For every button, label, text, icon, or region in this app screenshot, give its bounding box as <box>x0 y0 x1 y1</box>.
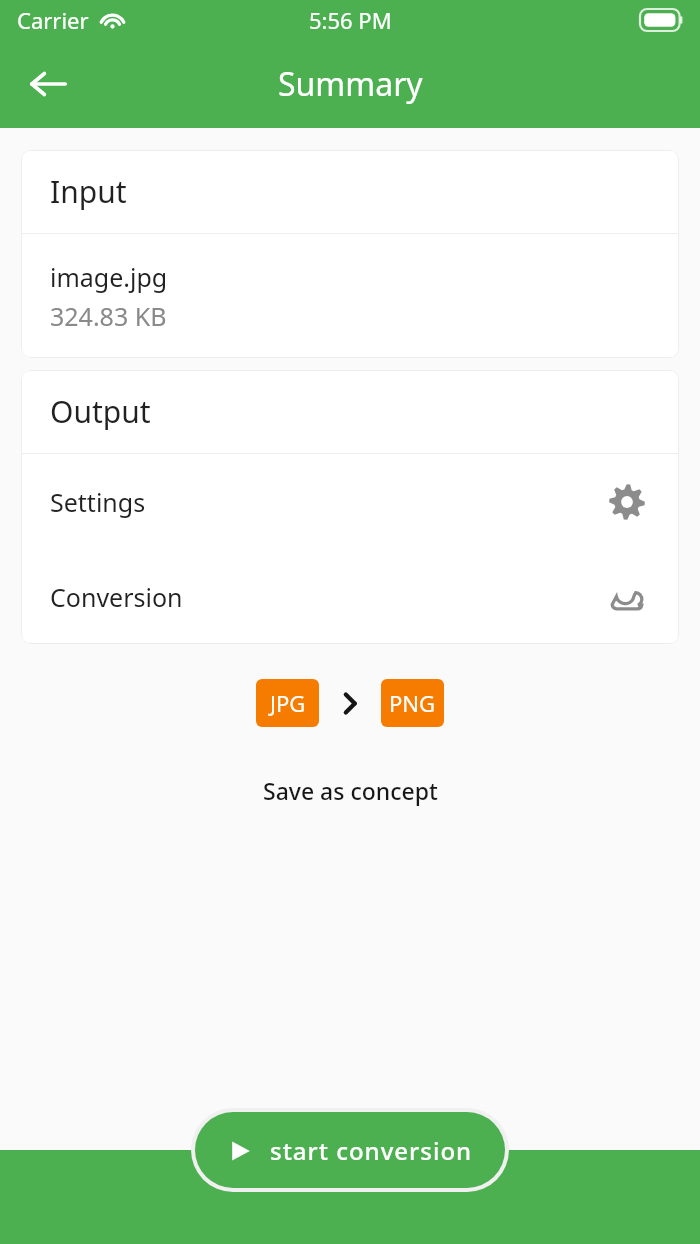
staticText: Carrier <box>17 5 89 35</box>
staticText: JPG <box>270 688 306 718</box>
staticText: Input <box>50 171 127 212</box>
staticText: Settings <box>50 485 146 519</box>
button[interactable]: Save as concept <box>0 769 700 812</box>
staticText: Summary <box>278 62 423 106</box>
button[interactable]: JPG <box>256 679 319 727</box>
button[interactable]: start conversion <box>195 1112 505 1188</box>
staticText: 324.83 KB <box>50 299 167 333</box>
staticText: image.jpg <box>50 260 168 294</box>
staticText: Output <box>50 391 151 432</box>
staticText: 5:56 PM <box>309 5 392 35</box>
button[interactable]: Back <box>14 50 82 118</box>
other: converts to <box>337 690 363 716</box>
staticText: PNG <box>389 688 436 718</box>
staticText: Save as concept <box>263 775 438 806</box>
button[interactable]: PNG <box>381 679 444 727</box>
other: Conversion, cloud <box>608 578 646 616</box>
button[interactable]: Settings <box>21 454 679 549</box>
button[interactable]: Conversion <box>21 549 679 644</box>
staticText: start conversion <box>270 1134 473 1167</box>
staticText: Conversion <box>50 580 183 614</box>
other: Settings <box>608 483 646 521</box>
